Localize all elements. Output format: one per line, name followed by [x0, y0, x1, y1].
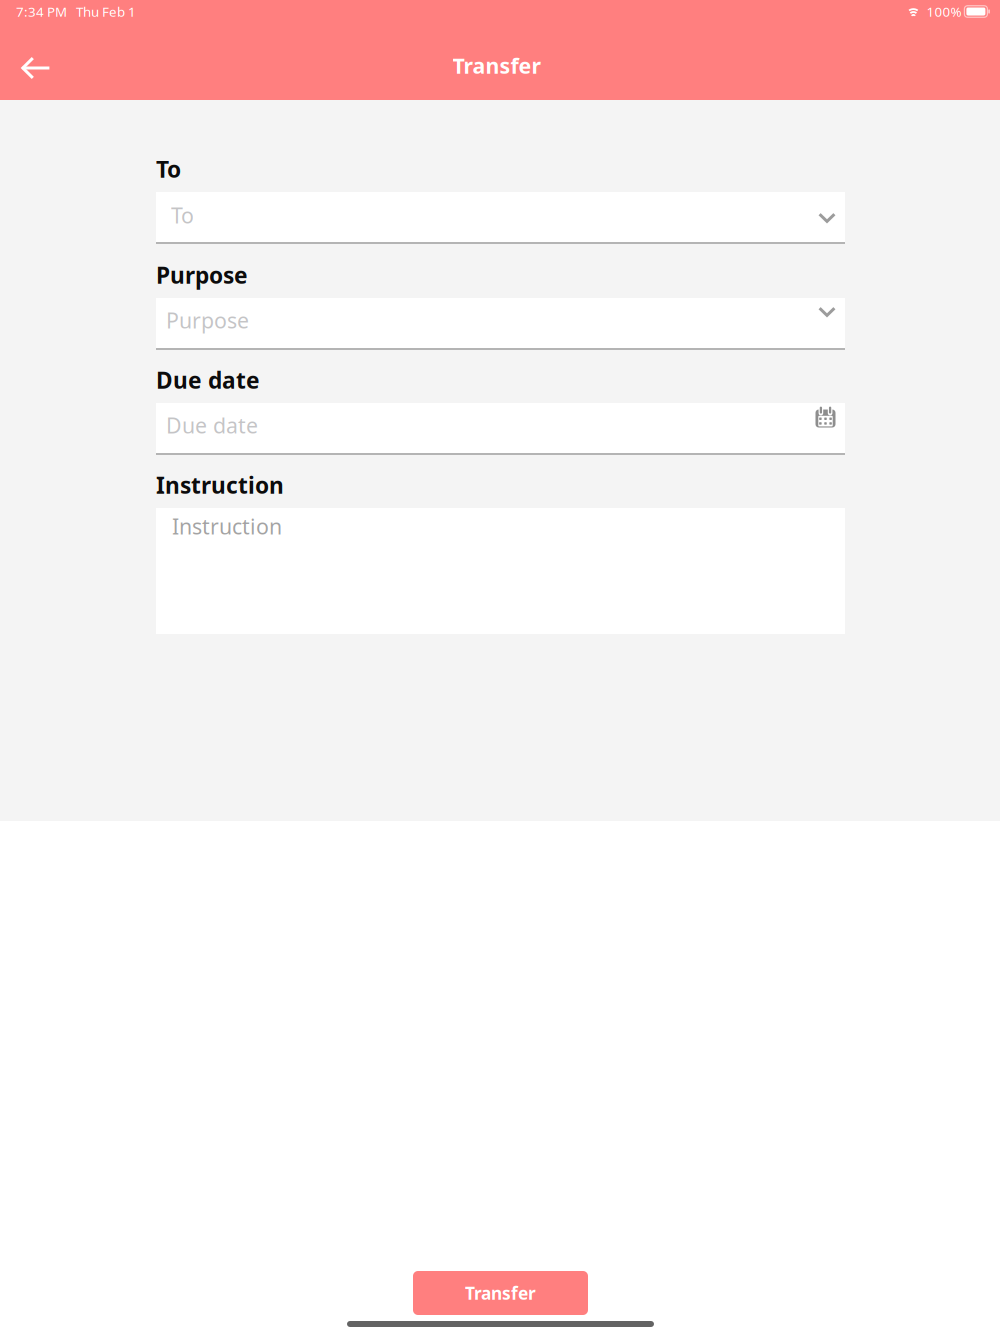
staticText: Instruction [156, 470, 284, 500]
staticText: Transfer [465, 1281, 536, 1304]
staticText: 100% [926, 3, 961, 20]
staticText: To [171, 201, 194, 229]
button[interactable]: Instruction [156, 508, 845, 634]
staticText: Due date [156, 365, 260, 395]
staticText: Transfer [452, 51, 541, 80]
button[interactable]: Purpose [156, 298, 845, 350]
staticText: Purpose [166, 306, 249, 334]
staticText: 7:34 PM [16, 3, 67, 20]
staticText: Due date [166, 411, 258, 439]
staticText: To [156, 154, 181, 184]
button[interactable]: Transfer [413, 1271, 588, 1315]
button[interactable]: Due date [156, 403, 845, 455]
staticText: Purpose [156, 260, 248, 290]
button[interactable]: To [156, 192, 845, 244]
staticText: Instruction [172, 512, 282, 540]
button[interactable]: Back [2, 37, 70, 99]
staticText: Thu Feb 1 [76, 3, 136, 20]
